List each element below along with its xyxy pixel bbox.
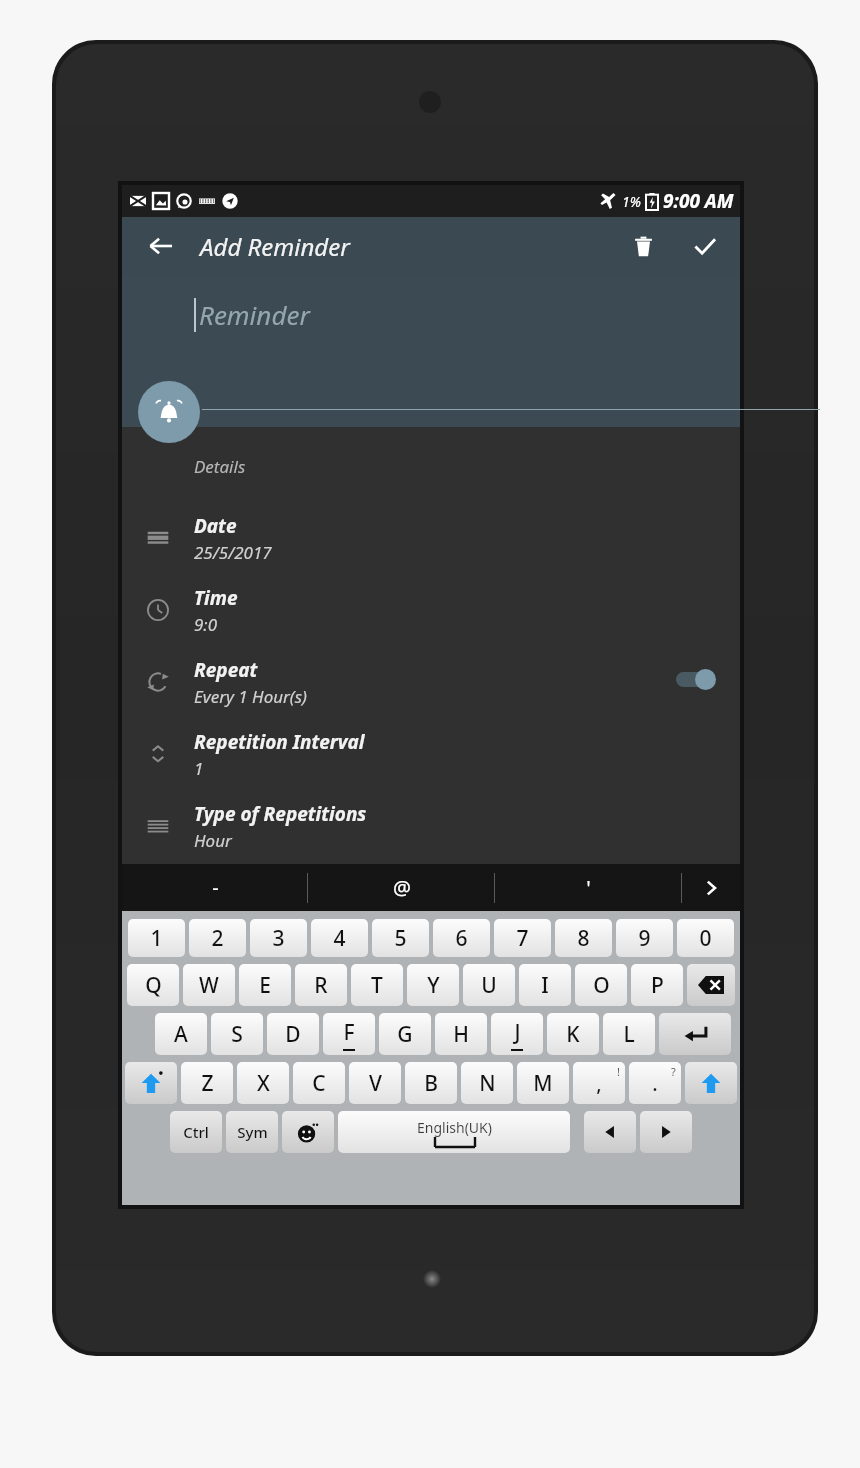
button[interactable]: Sym	[226, 1111, 278, 1153]
staticText: 5	[394, 924, 407, 953]
button[interactable]: Emoji	[282, 1111, 334, 1153]
staticText: R	[314, 971, 328, 1000]
button[interactable]: F	[323, 1013, 375, 1055]
button[interactable]: O	[575, 964, 627, 1006]
button[interactable]: Time	[122, 574, 740, 646]
staticText: English(UK)	[417, 1118, 492, 1137]
staticText: 8	[577, 924, 590, 953]
staticText: 9:00 AM	[663, 188, 734, 214]
button[interactable]: 9	[616, 919, 673, 957]
button[interactable]: Reminder type	[138, 381, 200, 443]
button[interactable]: '	[495, 864, 682, 911]
button[interactable]: U	[463, 964, 515, 1006]
staticText: I	[541, 971, 549, 1000]
button[interactable]: Repeat	[122, 646, 740, 718]
button[interactable]: 1	[128, 919, 185, 957]
staticText: ?	[671, 1064, 676, 1079]
staticText: 3	[272, 924, 285, 953]
staticText: Ctrl	[183, 1122, 209, 1142]
button[interactable]: J	[491, 1013, 543, 1055]
button[interactable]: 0	[677, 919, 734, 957]
staticText: Every 1 Hour(s)	[194, 685, 308, 708]
staticText: V	[369, 1069, 382, 1098]
button[interactable]: K	[547, 1013, 599, 1055]
button[interactable]: E	[239, 964, 291, 1006]
button[interactable]: .	[629, 1062, 681, 1104]
button[interactable]: Backspace	[687, 964, 735, 1006]
staticText: B	[424, 1069, 438, 1098]
staticText: F	[343, 1018, 355, 1047]
button[interactable]: Delete	[626, 229, 660, 263]
staticText: 1	[194, 757, 204, 780]
button[interactable]: 5	[372, 919, 429, 957]
button[interactable]: 4	[311, 919, 368, 957]
button[interactable]: P	[631, 964, 683, 1006]
staticText: G	[397, 1020, 413, 1049]
button[interactable]: N	[461, 1062, 513, 1104]
button[interactable]: -	[122, 864, 308, 911]
button[interactable]: 8	[555, 919, 612, 957]
staticText: T	[371, 971, 383, 1000]
button[interactable]: G	[379, 1013, 431, 1055]
button[interactable]: Y	[407, 964, 459, 1006]
staticText: 6	[455, 924, 468, 953]
button[interactable]: Space	[338, 1111, 570, 1153]
staticText: 9:0	[194, 613, 218, 636]
button[interactable]: 6	[433, 919, 490, 957]
button[interactable]: Shift	[125, 1062, 177, 1104]
staticText: Hour	[194, 829, 232, 852]
staticText: S	[231, 1020, 243, 1049]
button[interactable]: M	[517, 1062, 569, 1104]
button[interactable]: Save	[688, 229, 722, 263]
button[interactable]: B	[405, 1062, 457, 1104]
button[interactable]: D	[267, 1013, 319, 1055]
staticText: U	[481, 971, 497, 1000]
button[interactable]: S	[211, 1013, 263, 1055]
button[interactable]: Repetition Interval	[122, 718, 740, 790]
staticText: Sym	[237, 1122, 268, 1142]
button[interactable]: Q	[127, 964, 179, 1006]
staticText: J	[514, 1018, 521, 1047]
button[interactable]: Type of Repetitions	[122, 790, 740, 862]
button[interactable]: Shift	[685, 1062, 737, 1104]
button[interactable]: R	[295, 964, 347, 1006]
button[interactable]: 2	[189, 919, 246, 957]
button[interactable]: More suggestions	[682, 864, 740, 911]
button[interactable]: Back	[144, 229, 178, 263]
button[interactable]: L	[603, 1013, 655, 1055]
button[interactable]: 3	[250, 919, 307, 957]
button[interactable]: T	[351, 964, 403, 1006]
staticText: L	[623, 1020, 635, 1049]
staticText: Details	[194, 455, 246, 478]
staticText: C	[312, 1069, 326, 1098]
staticText: M	[533, 1069, 553, 1098]
button[interactable]: V	[349, 1062, 401, 1104]
button[interactable]: Z	[181, 1062, 233, 1104]
staticText: P	[651, 971, 664, 1000]
button[interactable]: @	[308, 864, 495, 911]
button[interactable]: I	[519, 964, 571, 1006]
staticText: 0	[699, 924, 712, 953]
staticText: Time	[194, 585, 238, 611]
staticText: Z	[201, 1069, 214, 1098]
staticText: 7	[516, 924, 529, 953]
staticText: -	[212, 874, 219, 901]
button[interactable]: Move cursor left	[584, 1111, 636, 1153]
staticText: Type of Repetitions	[194, 801, 367, 827]
button[interactable]: A	[155, 1013, 207, 1055]
staticText: 9	[638, 924, 651, 953]
button[interactable]: Date	[122, 502, 740, 574]
staticText: @	[393, 874, 411, 901]
button[interactable]: Enter	[659, 1013, 731, 1055]
staticText: K	[566, 1020, 580, 1049]
staticText: 2	[211, 924, 224, 953]
button[interactable]: X	[237, 1062, 289, 1104]
button[interactable]: 7	[494, 919, 551, 957]
button[interactable]: C	[293, 1062, 345, 1104]
button[interactable]: ,	[573, 1062, 625, 1104]
button[interactable]: H	[435, 1013, 487, 1055]
staticText: Y	[427, 971, 440, 1000]
button[interactable]: W	[183, 964, 235, 1006]
button[interactable]: Move cursor right	[640, 1111, 692, 1153]
button[interactable]: Ctrl	[170, 1111, 222, 1153]
